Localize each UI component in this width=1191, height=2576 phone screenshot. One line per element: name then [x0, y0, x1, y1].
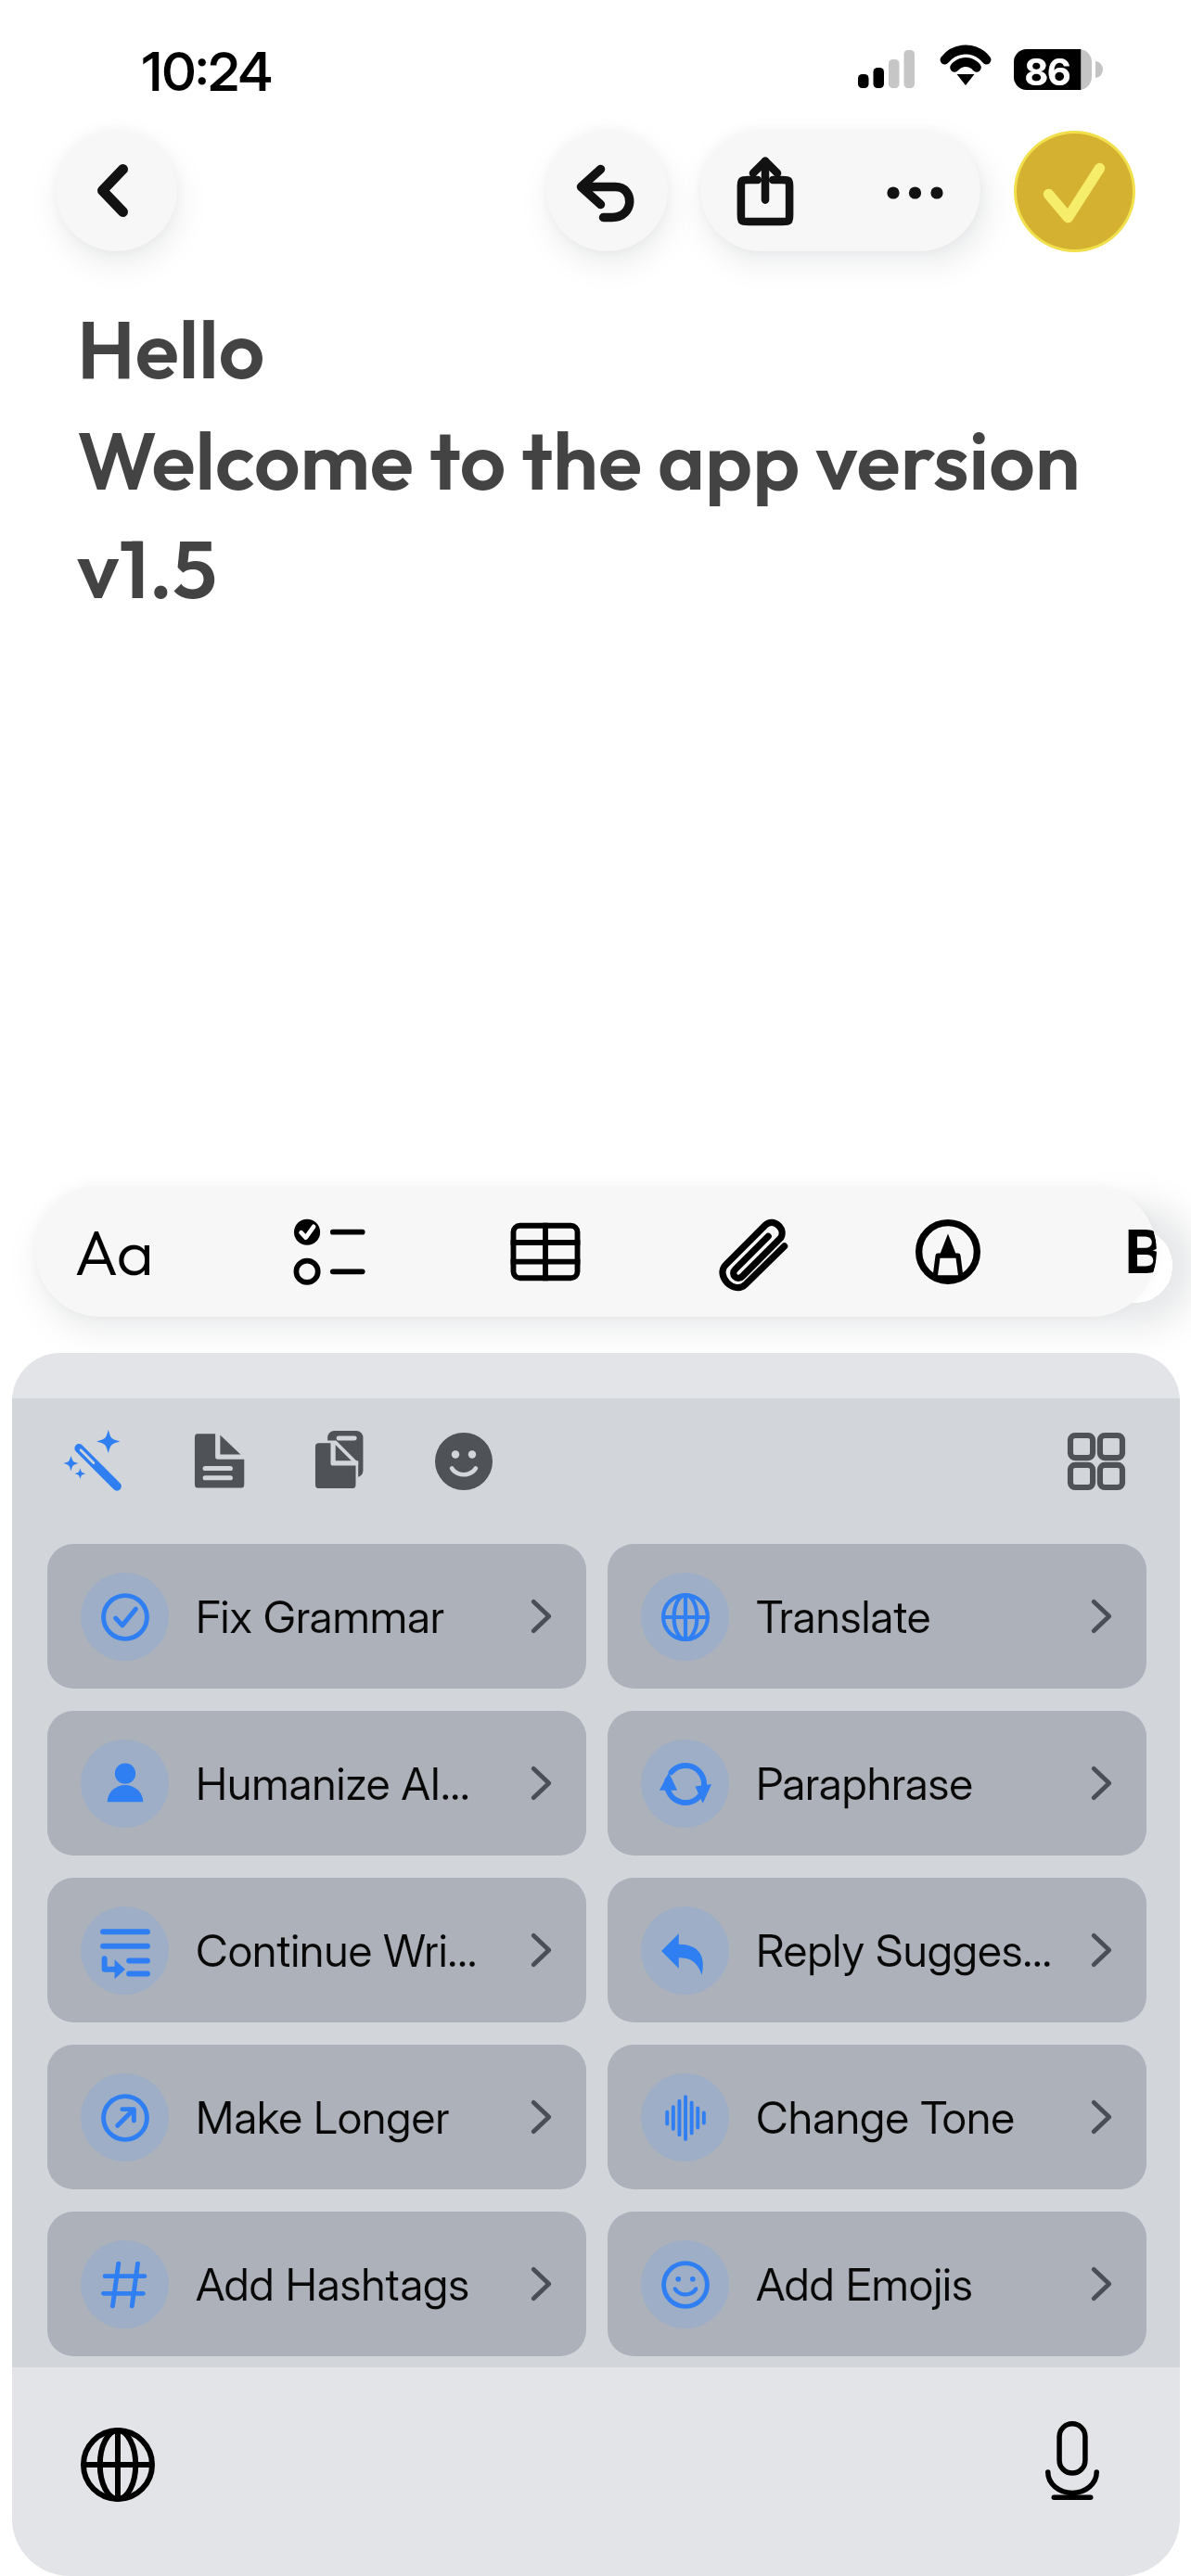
- staticText: Welcome to the app version: [77, 409, 1081, 511]
- staticText: Add Hashtags: [196, 2257, 469, 2311]
- button[interactable]: Make Longer: [47, 2045, 586, 2189]
- button[interactable]: Table: [480, 1186, 610, 1317]
- button[interactable]: Done: [1017, 134, 1133, 249]
- staticText: Continue Wri...: [196, 1923, 478, 1977]
- button[interactable]: Draw: [883, 1186, 1013, 1317]
- staticText: Change Tone: [756, 2090, 1015, 2144]
- button[interactable]: Bold: [1125, 1186, 1157, 1317]
- staticText: Paraphrase: [756, 1756, 974, 1810]
- button[interactable]: Back: [56, 130, 177, 251]
- staticText: 10:24: [142, 40, 273, 104]
- button[interactable]: Attach: [689, 1186, 819, 1317]
- button[interactable]: Change keyboard language: [67, 2414, 169, 2516]
- button[interactable]: Fix Grammar: [47, 1544, 586, 1689]
- button[interactable]: Emoji: [412, 1409, 516, 1513]
- button[interactable]: Add Hashtags: [47, 2212, 586, 2356]
- staticText: 86: [1025, 49, 1071, 90]
- staticText: Humanize AI...: [196, 1756, 470, 1810]
- button[interactable]: Reply Sugges...: [608, 1878, 1146, 2022]
- button[interactable]: Clipboard: [290, 1409, 394, 1513]
- button[interactable]: Undo: [546, 130, 668, 251]
- staticText: Fix Grammar: [196, 1589, 445, 1643]
- button[interactable]: Translate: [608, 1544, 1146, 1689]
- staticText: Translate: [756, 1589, 931, 1643]
- staticText: v1.5: [77, 517, 218, 619]
- staticText: B: [1125, 1215, 1157, 1288]
- staticText: Make Longer: [196, 2090, 450, 2144]
- button[interactable]: Paraphrase: [608, 1711, 1146, 1855]
- button[interactable]: Dictation: [1021, 2410, 1123, 2512]
- button[interactable]: Add Emojis: [608, 2212, 1146, 2356]
- button[interactable]: Change Tone: [608, 2045, 1146, 2189]
- staticText: Aa: [74, 1211, 154, 1292]
- staticText: Hello: [77, 298, 265, 400]
- staticText: Add Emojis: [756, 2257, 973, 2311]
- button[interactable]: Share: [700, 130, 840, 251]
- button[interactable]: AI tools: [42, 1408, 146, 1511]
- button[interactable]: All tools: [1044, 1409, 1148, 1513]
- button[interactable]: Document: [167, 1409, 271, 1513]
- button[interactable]: Checklist: [264, 1186, 394, 1317]
- button[interactable]: Humanize AI...: [47, 1711, 586, 1855]
- button[interactable]: Aa: [49, 1186, 179, 1317]
- button[interactable]: More options: [840, 130, 980, 251]
- staticText: Reply Sugges...: [756, 1923, 1053, 1977]
- button[interactable]: Continue Wri...: [47, 1878, 586, 2022]
